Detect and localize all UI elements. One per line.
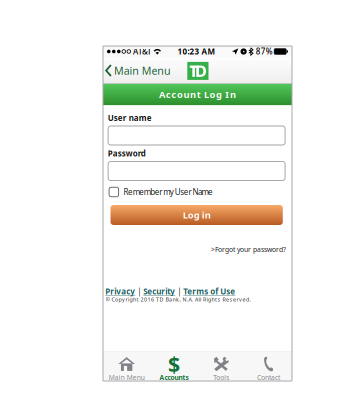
staticText: Security	[143, 286, 175, 297]
button[interactable]: Remember my User Name	[109, 186, 249, 197]
staticText: Tools	[213, 373, 229, 382]
button[interactable]: $	[150, 351, 197, 381]
staticText: Remember my User Name	[124, 187, 213, 197]
staticText: |	[135, 286, 143, 297]
staticText: 87%	[256, 46, 273, 57]
staticText: AT&T	[133, 46, 151, 57]
button[interactable]: >Forgot your password?	[210, 245, 287, 254]
button[interactable]: Log in	[110, 205, 283, 225]
staticText: Accounts	[159, 373, 188, 382]
staticText: $	[168, 350, 180, 378]
staticText: Account Log In	[159, 88, 236, 101]
button[interactable]: Privacy	[105, 286, 135, 297]
button[interactable]: Tools	[197, 351, 245, 381]
button[interactable]: TD Bank	[187, 62, 208, 80]
staticText: Password	[108, 148, 146, 159]
staticText: |	[175, 286, 183, 297]
staticText: Privacy	[105, 286, 135, 297]
staticText: 10:23 AM	[178, 46, 216, 57]
staticText: User name	[108, 112, 152, 123]
button[interactable]: Main Menu	[103, 351, 150, 381]
staticText: >Forgot your password?	[211, 245, 286, 254]
staticText: Contact	[257, 373, 280, 382]
button[interactable]: Security	[143, 286, 175, 297]
staticText: Main Menu	[114, 63, 171, 78]
button[interactable]: Main Menu	[103, 59, 178, 81]
staticText: Terms of Use	[183, 286, 235, 297]
staticText: © Copyright 2016 TD Bank, N.A. All Right…	[106, 296, 251, 303]
button[interactable]: Terms of Use	[183, 286, 235, 297]
staticText: Log in	[183, 209, 211, 221]
staticText: Main Menu	[109, 373, 145, 382]
button[interactable]: Contact	[245, 351, 292, 381]
